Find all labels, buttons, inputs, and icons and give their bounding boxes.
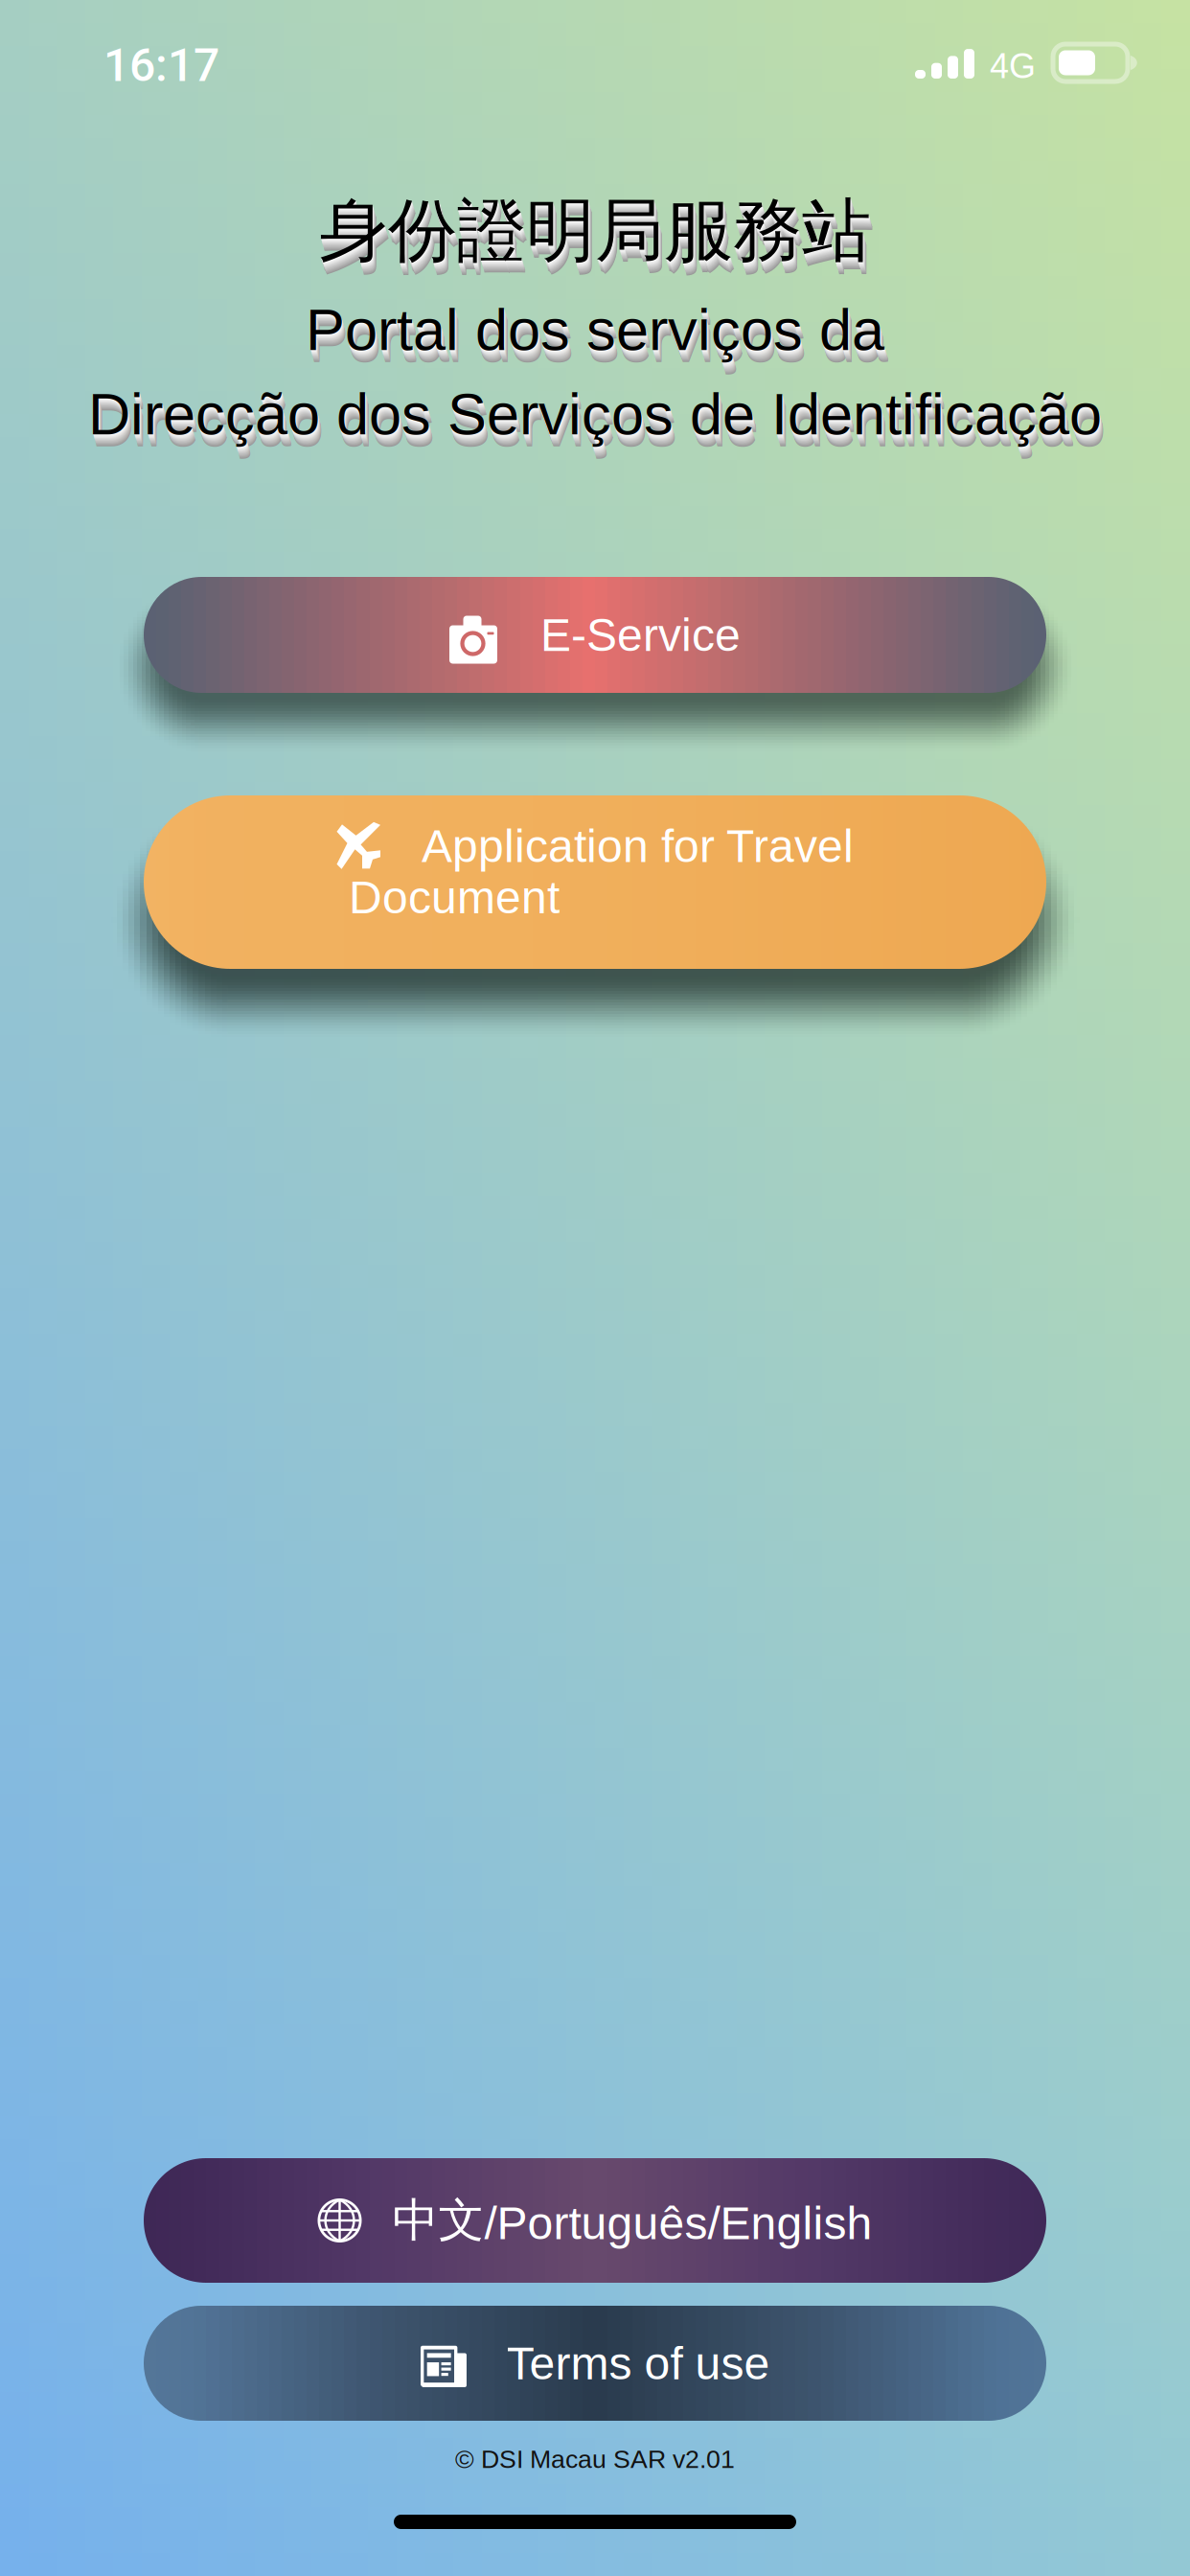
staticText: Portal dos serviços da (306, 299, 885, 364)
staticText: Portal dos serviços da (309, 308, 888, 374)
staticText: Direcção dos Serviços de Identificação (88, 382, 1102, 448)
staticText: Direcção dos Serviços de Identificação (91, 389, 1104, 455)
staticText: Portal dos serviços da (307, 302, 886, 368)
staticText: 4G (990, 47, 1036, 85)
staticText: Portal dos serviços da (309, 309, 888, 375)
staticText: Portal dos serviços da (307, 300, 885, 366)
staticText: 身份證明局服務站 (322, 199, 874, 285)
staticText: Direcção dos Serviços de Identificação (90, 386, 1103, 452)
staticText: 身份證明局服務站 (319, 187, 871, 274)
button[interactable]: 中文/Português/English (144, 2158, 1046, 2283)
staticText: 身份證明局服務站 (322, 197, 874, 283)
staticText: Direcção dos Serviços de Identificação (89, 385, 1103, 451)
staticText: 16:17 (103, 38, 219, 92)
staticText: Terms of use (506, 2338, 770, 2389)
staticText: Portal dos serviços da (308, 305, 887, 370)
staticText: Direcção dos Serviços de Identificação (91, 391, 1105, 457)
staticText: 身份證明局服務站 (322, 195, 873, 282)
staticText: 身份證明局服務站 (321, 195, 873, 281)
staticText: E-Service (540, 609, 741, 661)
staticText: Direcção dos Serviços de Identificação (92, 392, 1105, 458)
staticText: Direcção dos Serviços de Identificação (92, 393, 1105, 459)
staticText: 中文/Português/English (392, 2192, 872, 2249)
staticText: 身份證明局服務站 (320, 191, 872, 278)
staticText: Portal dos serviços da (307, 301, 886, 366)
staticText: Portal dos serviços da (306, 297, 884, 362)
staticText: Portal dos serviços da (306, 298, 885, 363)
staticText: 身份證明局服務站 (323, 200, 875, 286)
staticText: Direcção dos Serviços de Identificação (90, 388, 1104, 454)
staticText: 身份證明局服務站 (321, 193, 872, 279)
staticText: Direcção dos Serviços de Identificação (90, 387, 1104, 453)
button[interactable]: Application for Travel (144, 795, 1046, 969)
staticText: Document (349, 872, 560, 923)
staticText: Direcção dos Serviços de Identificação (88, 381, 1102, 447)
staticText: Portal dos serviços da (308, 304, 886, 370)
staticText: 身份證明局服務站 (322, 198, 874, 284)
staticText: Application for Travel (422, 820, 854, 872)
button[interactable]: Terms of use (144, 2306, 1046, 2421)
staticText: Portal dos serviços da (308, 306, 887, 372)
button[interactable]: E-Service (144, 577, 1046, 693)
staticText: © DSI Macau SAR v2.01 (455, 2445, 735, 2473)
staticText: 身份證明局服務站 (319, 189, 871, 275)
staticText: Direcção dos Serviços de Identificação (89, 383, 1102, 449)
staticText: 身份證明局服務站 (320, 189, 872, 276)
staticText: Portal dos serviços da (307, 303, 886, 368)
staticText: 身份證明局服務站 (321, 193, 873, 280)
staticText: Direcção dos Serviços de Identificação (89, 384, 1103, 450)
staticText: Portal dos serviços da (309, 307, 887, 373)
staticText: 身份證明局服務站 (320, 191, 872, 277)
staticText: Direcção dos Serviços de Identificação (91, 390, 1105, 456)
